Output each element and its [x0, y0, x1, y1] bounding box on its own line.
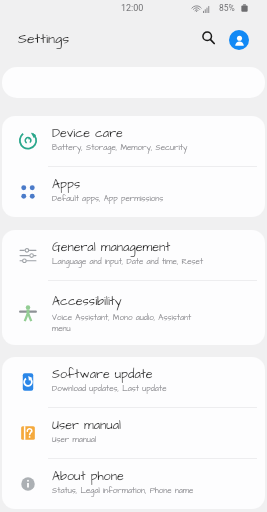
button[interactable]: Accessibility: [2, 281, 265, 345]
button[interactable]: Apps: [2, 167, 265, 217]
staticText: 12:00: [121, 3, 144, 14]
button[interactable]: User manual: [2, 408, 265, 458]
button[interactable]: General management: [2, 230, 265, 280]
button[interactable]: Account: [229, 30, 249, 50]
staticText: 85%: [219, 3, 235, 13]
staticText: User manual: [52, 434, 97, 445]
staticText: Accessibility: [52, 293, 122, 310]
staticText: Status, Legal information, Phone name: [52, 485, 194, 496]
staticText: Device care: [52, 125, 123, 142]
staticText: General management: [52, 239, 171, 256]
staticText: Battery, Storage, Memory, Security: [52, 142, 188, 153]
staticText: Download updates, Last update: [52, 383, 167, 394]
staticText: About phone: [52, 468, 124, 485]
staticText: Settings: [18, 29, 70, 48]
button[interactable]: About phone: [2, 459, 265, 509]
button[interactable]: Software update: [2, 357, 265, 407]
staticText: Default apps, App permissions: [52, 193, 164, 204]
staticText: Voice Assistant, Mono audio, Assistant m…: [52, 312, 192, 334]
staticText: User manual: [52, 417, 121, 434]
staticText: Apps: [52, 176, 81, 193]
staticText: Language and input, Date and time, Reset: [52, 256, 204, 267]
staticText: Software update: [52, 366, 153, 383]
button[interactable]: Device care: [2, 116, 265, 166]
button[interactable]: Search: [195, 24, 221, 50]
